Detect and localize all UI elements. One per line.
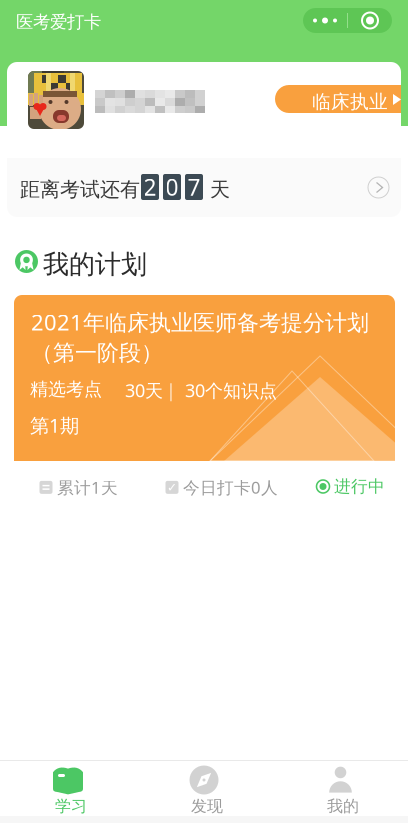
staticText: （第一阶段） [31,339,163,367]
staticText: 今日打卡0人 [183,476,278,499]
staticText: 医考爱打卡 [16,11,101,33]
button[interactable]: 我的 [272,761,408,823]
button[interactable]: 学习 [0,761,136,823]
staticText: 2 [143,172,156,202]
button[interactable]: 临床执业 [275,85,408,113]
button[interactable]: 2021年临床执业医师备考提分计划 [14,295,395,506]
staticText: 我的 [327,796,359,816]
staticText: 30天 [125,378,163,402]
button[interactable]: 发现 [136,761,272,823]
staticText: 天 [210,177,230,202]
staticText: 我的计划 [43,248,147,281]
staticText: 临床执业 [312,90,388,113]
staticText: 学习 [55,796,87,816]
staticText: 距离考试还有 [20,177,140,202]
staticText: 第1期 [30,412,79,438]
staticText: 发现 [191,796,223,816]
button[interactable]: 更多 [303,8,392,33]
staticText: ✓ [167,480,177,494]
staticText: | [166,378,176,402]
staticText: 精选考点 [30,378,102,401]
staticText: 2021年临床执业医师备考提分计划 [31,307,369,337]
staticText: 30个知识点 [185,378,277,402]
staticText: 累计1天 [57,476,118,499]
staticText: 0 [165,172,178,202]
staticText: 进行中 [334,476,385,497]
staticText: 7 [187,172,200,202]
